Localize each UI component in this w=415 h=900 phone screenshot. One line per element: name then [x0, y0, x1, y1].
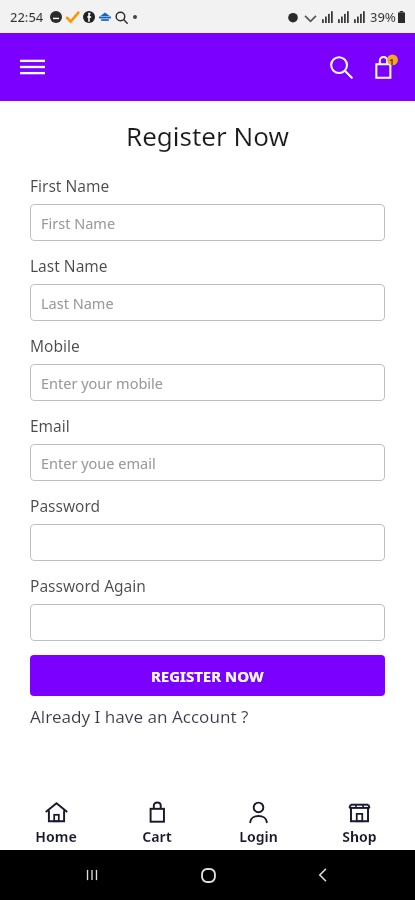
staticText: First Name — [30, 175, 110, 196]
button[interactable]: Home — [11, 799, 101, 848]
staticText: Already I have an Account ? — [30, 705, 249, 728]
button[interactable]: Cart — [112, 799, 202, 848]
button[interactable]: Open navigation menu — [10, 45, 54, 89]
staticText: REGISTER NOW — [151, 666, 264, 686]
button[interactable]: REGISTER NOW — [30, 655, 385, 696]
button[interactable]: Shop — [314, 799, 404, 848]
staticText: Login — [239, 827, 278, 846]
button[interactable]: Login — [213, 799, 303, 848]
staticText: Register Now — [126, 118, 289, 153]
staticText: Last Name — [41, 293, 114, 313]
staticText: 22:54 — [10, 8, 44, 26]
staticText: Last Name — [30, 255, 108, 276]
button[interactable] — [30, 524, 385, 561]
button[interactable]: Already I have an Account ? — [30, 705, 385, 728]
button[interactable]: Enter youe email — [30, 444, 385, 481]
staticText: Email — [30, 415, 70, 436]
staticText: Cart — [142, 827, 172, 846]
button[interactable]: Home — [184, 851, 232, 899]
button[interactable]: First Name — [30, 204, 385, 241]
staticText: Password Again — [30, 575, 146, 596]
staticText: 1 — [389, 55, 395, 67]
staticText: Enter your mobile — [41, 373, 163, 393]
staticText: Password — [30, 495, 101, 516]
button[interactable]: Back — [299, 851, 347, 899]
button[interactable]: Cart, 1 item — [363, 45, 407, 89]
button[interactable]: Recent apps — [68, 851, 116, 899]
button[interactable]: Last Name — [30, 284, 385, 321]
button[interactable]: Enter your mobile — [30, 364, 385, 401]
staticText: First Name — [41, 213, 116, 233]
staticText: Home — [35, 827, 77, 846]
staticText: 39% — [370, 8, 396, 26]
staticText: Mobile — [30, 335, 80, 356]
staticText: Enter youe email — [41, 453, 156, 473]
staticText: Shop — [342, 827, 377, 846]
button[interactable]: Search — [319, 45, 363, 89]
button[interactable] — [30, 604, 385, 641]
